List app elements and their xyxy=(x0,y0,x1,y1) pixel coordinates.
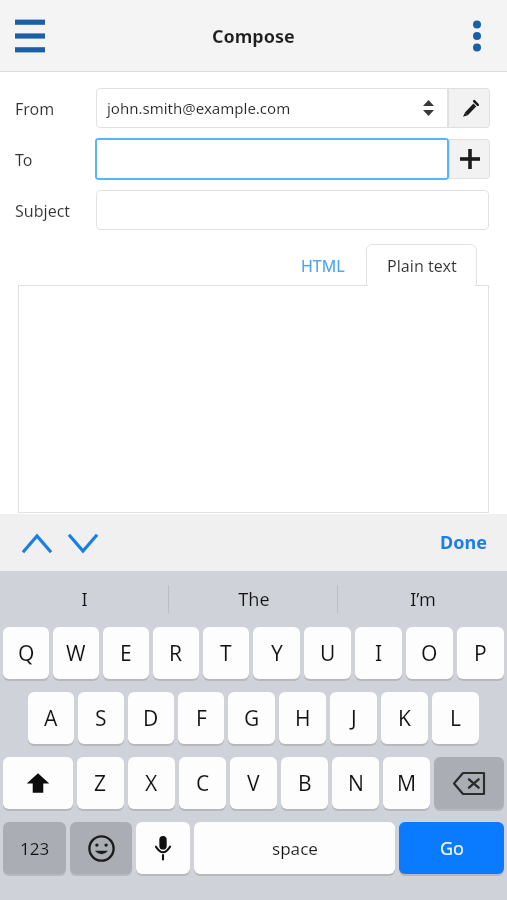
staticText: D xyxy=(143,704,159,733)
button[interactable]: A xyxy=(28,692,74,744)
staticText: S xyxy=(95,704,107,733)
staticText: W xyxy=(66,639,86,668)
staticText: H xyxy=(295,704,311,733)
button[interactable]: I’m xyxy=(338,571,507,627)
staticText: X xyxy=(145,769,158,798)
staticText: I xyxy=(375,639,383,668)
staticText: To xyxy=(15,149,33,171)
staticText: Done xyxy=(440,530,487,555)
button[interactable]: B xyxy=(281,757,328,809)
button[interactable] xyxy=(18,285,489,513)
staticText: Go xyxy=(440,836,464,861)
button[interactable]: Y xyxy=(253,627,300,679)
button[interactable]: Z xyxy=(77,757,124,809)
staticText: Z xyxy=(94,769,107,798)
button[interactable]: space xyxy=(194,822,395,874)
staticText: G xyxy=(244,704,260,733)
staticText: From xyxy=(15,98,55,120)
staticText: O xyxy=(421,639,438,668)
button[interactable]: T xyxy=(203,627,249,679)
staticText: C xyxy=(196,769,210,798)
staticText: Compose xyxy=(212,24,295,49)
button[interactable]: 123 xyxy=(3,822,66,874)
button[interactable]: P xyxy=(457,627,504,679)
button[interactable]: M xyxy=(383,757,430,809)
button[interactable]: E xyxy=(103,627,149,679)
button[interactable]: Plain text xyxy=(366,244,477,288)
staticText: 123 xyxy=(20,837,50,860)
staticText: P xyxy=(474,639,487,668)
staticText: Y xyxy=(271,639,283,668)
button[interactable]: R xyxy=(153,627,199,679)
button[interactable]: Next field xyxy=(60,520,106,566)
staticText: L xyxy=(450,704,462,733)
button[interactable]: I xyxy=(355,627,402,679)
staticText: Q xyxy=(18,639,35,668)
staticText: J xyxy=(351,704,357,733)
button[interactable]: J xyxy=(330,692,377,744)
button[interactable]: Backspace xyxy=(434,757,504,809)
button[interactable]: More options xyxy=(453,12,501,60)
staticText: K xyxy=(398,704,411,733)
button[interactable]: W xyxy=(53,627,99,679)
staticText: Plain text xyxy=(387,255,457,277)
staticText: N xyxy=(348,769,364,798)
button[interactable]: Add recipient xyxy=(449,139,490,179)
staticText: F xyxy=(196,704,207,733)
button[interactable] xyxy=(96,190,489,230)
staticText: Subject xyxy=(15,200,71,222)
staticText: E xyxy=(120,639,132,668)
staticText: space xyxy=(272,837,318,860)
staticText: I’m xyxy=(410,587,436,612)
button[interactable]: john.smith@example.com xyxy=(96,88,448,128)
button[interactable]: H xyxy=(279,692,326,744)
button[interactable]: X xyxy=(128,757,175,809)
button[interactable]: Done xyxy=(432,524,495,561)
button[interactable]: Previous field xyxy=(14,520,60,566)
staticText: V xyxy=(247,769,260,798)
staticText: T xyxy=(220,639,232,668)
button[interactable]: L xyxy=(432,692,479,744)
button[interactable]: Q xyxy=(3,627,49,679)
staticText: A xyxy=(44,704,58,733)
button[interactable]: Go xyxy=(399,822,504,874)
staticText: The xyxy=(238,587,270,612)
staticText: I xyxy=(81,587,88,612)
button[interactable]: N xyxy=(332,757,379,809)
button[interactable]: Menu xyxy=(6,12,54,60)
button[interactable]: K xyxy=(381,692,428,744)
button[interactable]: The xyxy=(169,571,338,627)
staticText: R xyxy=(169,639,183,668)
button[interactable]: Voice input xyxy=(136,822,190,874)
button[interactable]: F xyxy=(178,692,224,744)
staticText: M xyxy=(397,769,417,798)
button[interactable]: O xyxy=(406,627,453,679)
button[interactable]: S xyxy=(78,692,124,744)
staticText: HTML xyxy=(301,255,345,277)
button[interactable]: V xyxy=(230,757,277,809)
staticText: john.smith@example.com xyxy=(107,98,291,118)
button[interactable]: HTML xyxy=(283,247,363,285)
button[interactable]: C xyxy=(179,757,226,809)
button[interactable]: G xyxy=(228,692,275,744)
staticText: B xyxy=(298,769,312,798)
button[interactable]: D xyxy=(128,692,174,744)
staticText: U xyxy=(320,639,336,668)
button[interactable]: Emoji xyxy=(70,822,132,874)
button[interactable]: Shift xyxy=(3,757,73,809)
button[interactable]: I xyxy=(0,571,169,627)
button[interactable]: U xyxy=(304,627,351,679)
button[interactable] xyxy=(95,138,449,180)
button[interactable]: Edit sender xyxy=(448,88,490,128)
